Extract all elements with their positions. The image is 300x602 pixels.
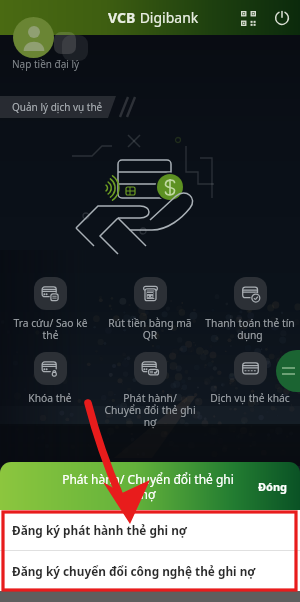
button[interactable]: More bbox=[276, 350, 300, 392]
staticText: Nạp tiền đại lý bbox=[12, 57, 80, 71]
button[interactable]: Phát hành/ Chuyển đổi thẻ ghi nợ bbox=[0, 462, 300, 510]
staticText: Rút tiền bằng mã QR bbox=[108, 316, 192, 342]
staticText: Đăng ký phát hành thẻ ghi nợ bbox=[12, 522, 187, 538]
button[interactable]: Khóa thẻ bbox=[0, 347, 100, 437]
button[interactable]: Tra cứu/ Sao kê thẻ bbox=[0, 272, 100, 347]
staticText: Đăng ký chuyển đổi công nghệ thẻ ghi nợ bbox=[12, 563, 256, 579]
staticText: Khóa thẻ bbox=[28, 391, 72, 405]
button[interactable]: Rút tiền bằng mã QR bbox=[100, 272, 200, 347]
button[interactable]: Profile bbox=[13, 17, 54, 58]
staticText: Phát hành/ Chuyển đổi thẻ ghi nợ bbox=[104, 391, 196, 429]
button[interactable]: Dịch vụ thẻ khác bbox=[200, 347, 300, 437]
staticText: VCB bbox=[108, 8, 136, 27]
staticText: Digibank bbox=[136, 8, 199, 27]
staticText: Tra cứu/ Sao kê thẻ bbox=[13, 316, 88, 342]
button[interactable]: Đóng bbox=[254, 475, 292, 498]
staticText: Dịch vụ thẻ khác bbox=[210, 391, 290, 405]
button[interactable]: Đăng ký chuyển đổi công nghệ thẻ ghi nợ bbox=[0, 551, 300, 591]
button[interactable]: Thanh toán thẻ tín dụng bbox=[200, 272, 300, 347]
staticText: Quản lý dịch vụ thẻ bbox=[12, 100, 103, 114]
button[interactable]: Đăng ký phát hành thẻ ghi nợ bbox=[0, 510, 300, 550]
button[interactable]: QR code scan bbox=[236, 6, 260, 30]
button[interactable]: Phát hành/ Chuyển đổi thẻ ghi nợ bbox=[100, 347, 200, 437]
staticText: Phát hành/ Chuyển đổi thẻ ghi nợ bbox=[53, 471, 243, 502]
button[interactable]: Log out bbox=[270, 6, 294, 30]
staticText: Thanh toán thẻ tín dụng bbox=[205, 316, 295, 342]
staticText: Đóng bbox=[258, 479, 288, 494]
